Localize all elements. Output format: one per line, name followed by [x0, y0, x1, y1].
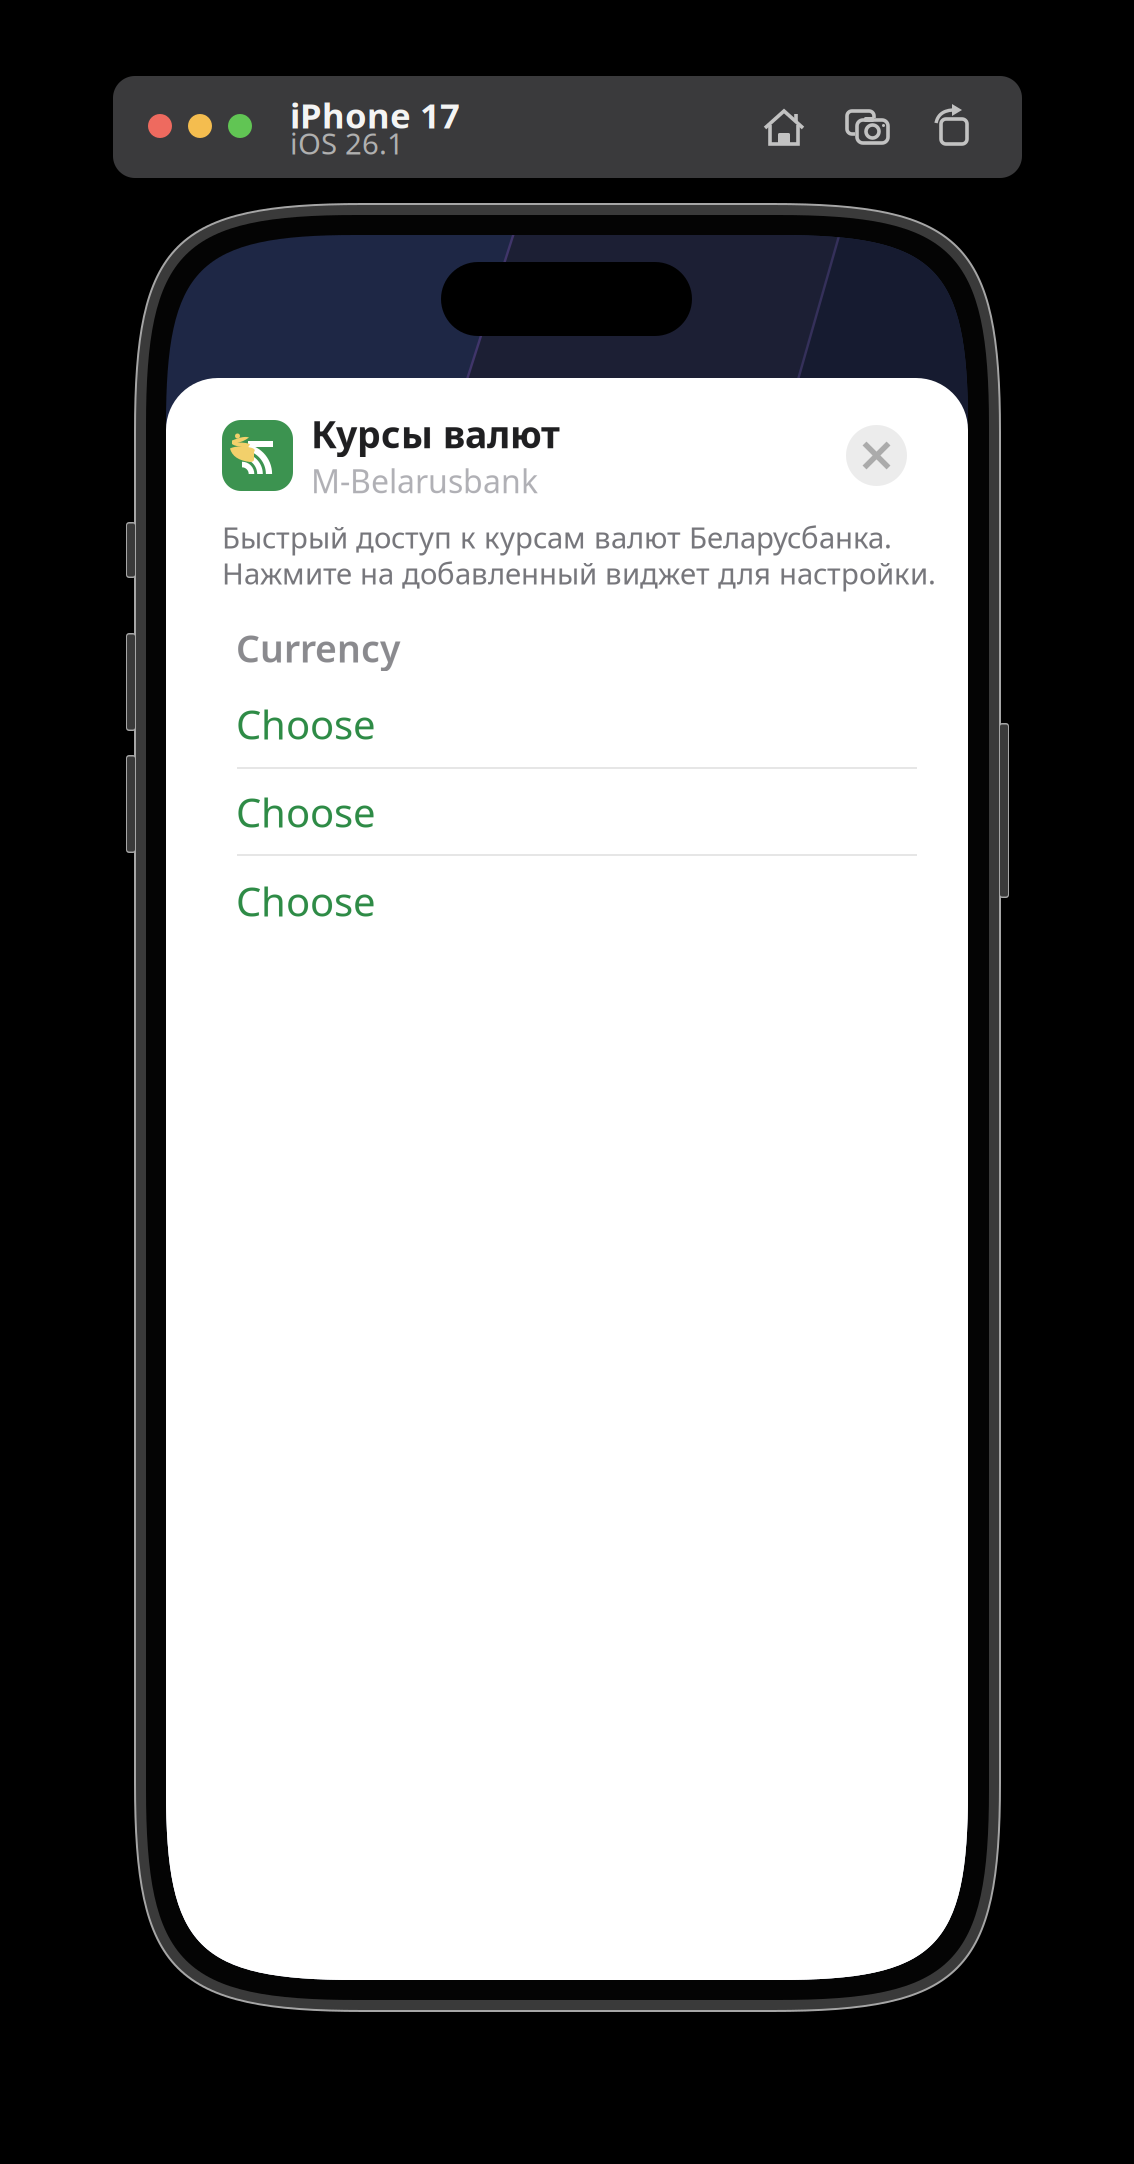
- staticText: Currency: [236, 623, 400, 673]
- button[interactable]: Close: [846, 425, 907, 486]
- button[interactable]: Home: [755, 98, 813, 156]
- button[interactable]: Choose: [236, 786, 930, 838]
- staticText: iPhone 17: [290, 92, 460, 138]
- staticText: Нажмите на добавленный виджет для настро…: [222, 553, 936, 592]
- staticText: Быстрый доступ к курсам валют Беларусбан…: [222, 517, 892, 556]
- staticText: Choose: [236, 785, 376, 838]
- button[interactable]: Choose: [236, 875, 930, 927]
- staticText: Choose: [236, 874, 376, 927]
- staticText: M-Belarusbank: [311, 459, 538, 502]
- staticText: Курсы валют: [311, 409, 560, 459]
- staticText: iOS 26.1: [290, 123, 404, 162]
- button[interactable]: Rotate: [923, 98, 981, 156]
- button[interactable]: Choose: [236, 698, 930, 750]
- staticText: Choose: [236, 697, 376, 750]
- button[interactable]: Screenshot: [839, 98, 897, 156]
